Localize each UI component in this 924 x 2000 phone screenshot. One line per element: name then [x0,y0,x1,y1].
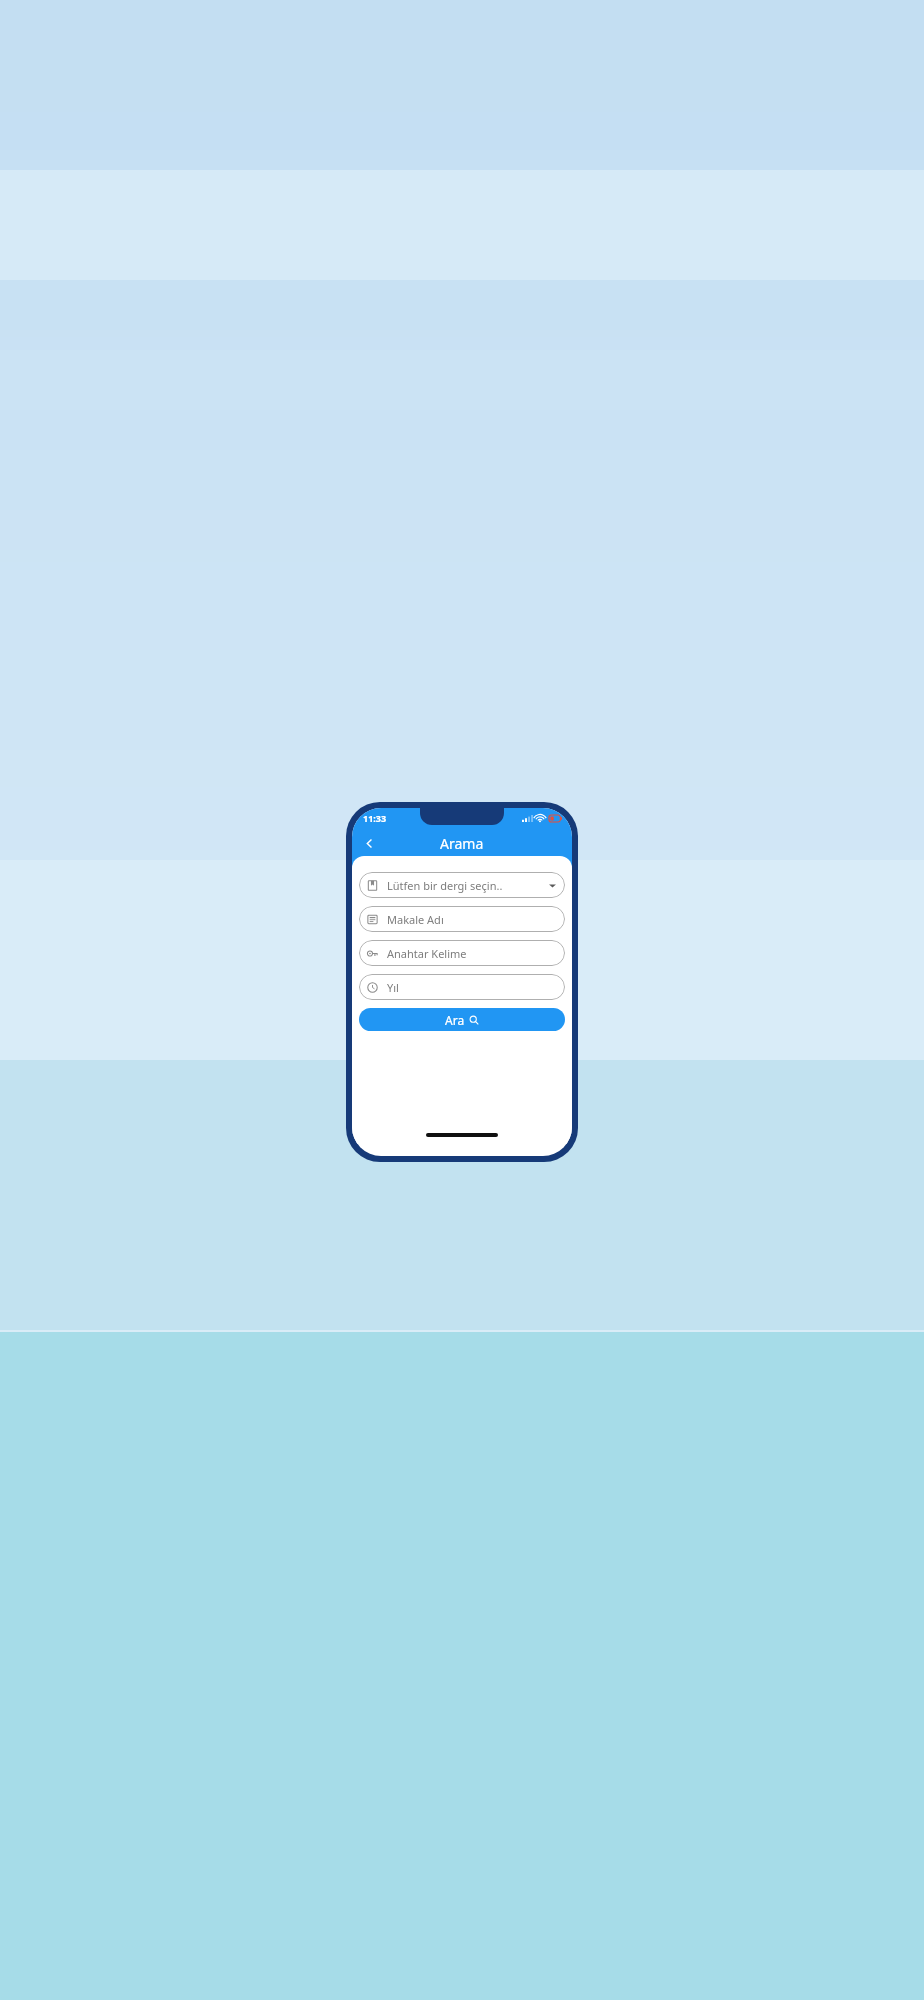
staticText: Lütfen bir dergi seçin.. [387,878,503,893]
staticText: Arama [440,834,484,853]
staticText: 11:33 [363,812,387,824]
button[interactable]: Anahtar Kelime [359,940,565,966]
button[interactable]: Makale Adı [359,906,565,932]
button[interactable]: Lütfen bir dergi seçin.. [359,872,565,898]
staticText: Ara [445,1012,465,1028]
button[interactable]: Ara [359,1008,565,1031]
staticText: Makale Adı [387,912,444,927]
button[interactable]: Yıl [359,974,565,1000]
staticText: Yıl [387,980,399,995]
button[interactable]: Back [356,830,382,856]
staticText: Anahtar Kelime [387,946,467,961]
